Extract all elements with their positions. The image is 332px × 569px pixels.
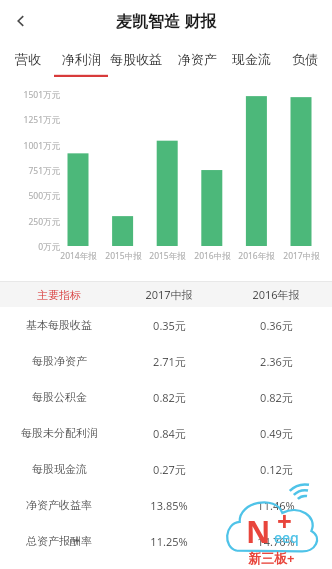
button[interactable]: 每股收益 (106, 42, 166, 76)
staticText: 0.12元 (260, 462, 293, 477)
button[interactable]: 营收 (11, 42, 45, 76)
staticText: eeq (274, 528, 299, 547)
staticText: 1501万元 (23, 89, 60, 101)
staticText: 每股未分配利润 (21, 426, 98, 440)
button[interactable]: Back (0, 0, 42, 42)
staticText: 2016中报 (194, 250, 231, 262)
staticText: 2017中报 (145, 287, 193, 302)
staticText: 2016年报 (238, 250, 275, 262)
staticText: 2.36元 (260, 354, 293, 369)
staticText: 每股净资产 (32, 354, 87, 368)
staticText: 0.27元 (153, 462, 186, 477)
staticText: 1251万元 (23, 114, 60, 126)
staticText: 净资产收益率 (26, 498, 92, 512)
staticText: 基本每股收益 (26, 318, 92, 332)
button[interactable]: 每股净资产 (0, 343, 332, 379)
staticText: 2016年报 (252, 287, 300, 302)
staticText: 营收 (15, 51, 41, 67)
button[interactable]: 每股未分配利润 (0, 415, 332, 451)
button[interactable]: 总资产报酬率 (0, 523, 332, 559)
staticText: 每股收益 (110, 51, 162, 67)
staticText: 0.82元 (153, 390, 186, 405)
staticText: 净利润 (62, 51, 101, 67)
staticText: 1001万元 (23, 140, 60, 152)
staticText: 751万元 (28, 165, 60, 177)
staticText: 新三板+ (248, 549, 295, 567)
staticText: 500万元 (28, 190, 60, 202)
staticText: 14.76% (257, 534, 295, 549)
staticText: 每股公积金 (32, 390, 87, 404)
staticText: 0.82元 (260, 390, 293, 405)
staticText: 负债 (292, 51, 318, 67)
staticText: 净资产 (178, 51, 217, 67)
staticText: 2014年报 (60, 250, 97, 262)
staticText: 250万元 (28, 216, 60, 228)
staticText: 2015年报 (149, 250, 186, 262)
staticText: 2.71元 (153, 354, 186, 369)
staticText: 0.35元 (153, 318, 186, 333)
button[interactable]: 负债 (288, 42, 322, 76)
button[interactable]: 基本每股收益 (0, 307, 332, 343)
button[interactable]: 净资产收益率 (0, 487, 332, 523)
staticText: 0万元 (38, 241, 60, 253)
staticText: + (277, 503, 292, 538)
staticText: N (246, 511, 271, 552)
staticText: 0.84元 (153, 426, 186, 441)
staticText: 总资产报酬率 (26, 534, 92, 548)
staticText: 11.46% (257, 498, 295, 513)
button[interactable]: 净利润 (58, 42, 105, 76)
staticText: 每股现金流 (32, 462, 87, 476)
button[interactable]: 每股现金流 (0, 451, 332, 487)
staticText: 0.36元 (260, 318, 293, 333)
button[interactable]: 现金流 (228, 42, 275, 76)
staticText: 13.85% (150, 498, 188, 513)
staticText: 0.49元 (260, 426, 293, 441)
staticText: 2017中报 (283, 250, 320, 262)
staticText: 现金流 (232, 51, 271, 67)
staticText: 2015中报 (105, 250, 142, 262)
button[interactable]: 净资产 (174, 42, 221, 76)
staticText: 主要指标 (37, 288, 81, 302)
staticText: 11.25% (150, 534, 188, 549)
button[interactable]: 每股公积金 (0, 379, 332, 415)
staticText: 麦凯智造 财报 (116, 10, 217, 32)
